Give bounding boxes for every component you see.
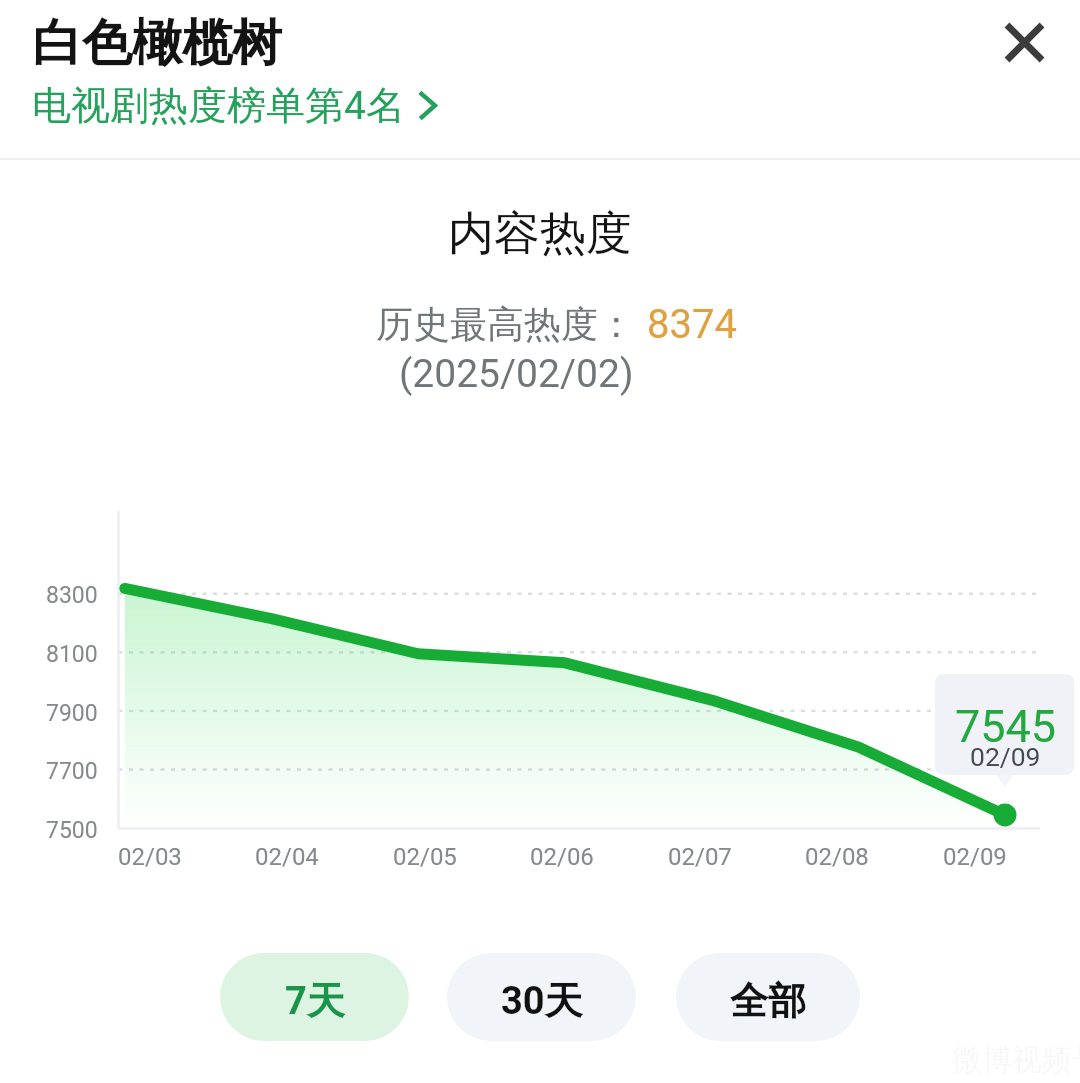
staticText: 02/04 <box>255 843 319 871</box>
staticText: 7545 <box>955 700 1057 753</box>
staticText: 02/06 <box>530 843 594 871</box>
staticText: (2025/02/02) <box>399 351 634 397</box>
staticText: 02/09 <box>943 843 1007 871</box>
button[interactable]: 30天 <box>447 953 636 1041</box>
staticText: 历史最高热度： <box>376 301 635 348</box>
staticText: 7500 <box>46 817 98 844</box>
staticText: 02/07 <box>668 843 732 871</box>
staticText: 电视剧热度榜单第4名 <box>32 81 405 130</box>
staticText: 8100 <box>46 641 98 668</box>
button[interactable]: 全部 <box>676 953 860 1041</box>
staticText: 微博视频号 <box>952 1041 1080 1079</box>
staticText: 7900 <box>46 700 98 727</box>
staticText: 全部 <box>730 977 806 1025</box>
staticText: 30天 <box>501 977 583 1025</box>
staticText: 7天 <box>285 977 345 1025</box>
staticText: 8300 <box>46 582 98 609</box>
button[interactable]: Close <box>984 2 1064 82</box>
staticText: 7700 <box>46 758 98 785</box>
staticText: 02/03 <box>118 843 182 871</box>
staticText: 02/09 <box>970 741 1041 772</box>
staticText: 02/05 <box>393 843 457 871</box>
staticText: 内容热度 <box>448 205 632 263</box>
button[interactable]: 7天 <box>220 953 409 1041</box>
button[interactable]: 电视剧热度榜单第4名 <box>32 81 437 130</box>
staticText: 02/08 <box>805 843 869 871</box>
staticText: 8374 <box>647 301 737 348</box>
staticText: 白色橄榄树 <box>32 12 282 75</box>
